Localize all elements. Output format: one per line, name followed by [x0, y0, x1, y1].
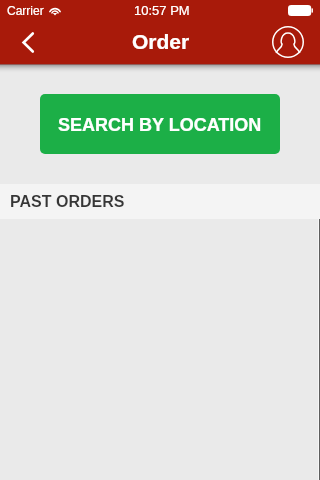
- button[interactable]: Back: [6, 20, 50, 64]
- button[interactable]: SEARCH BY LOCATION: [40, 94, 280, 154]
- staticText: PAST ORDERS: [10, 193, 125, 211]
- staticText: Carrier: [7, 4, 44, 17]
- staticText: Order: [132, 30, 190, 53]
- staticText: 10:57 PM: [134, 3, 190, 18]
- staticText: SEARCH BY LOCATION: [58, 115, 262, 135]
- button[interactable]: Profile: [266, 20, 310, 64]
